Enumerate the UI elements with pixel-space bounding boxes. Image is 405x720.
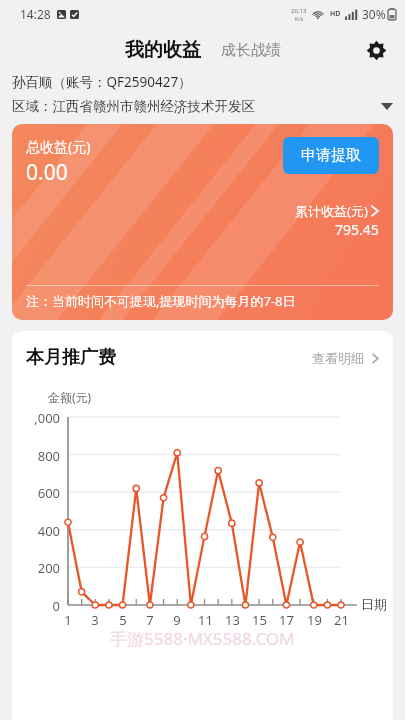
staticText: 800 bbox=[37, 447, 60, 465]
staticText: 总收益(元) bbox=[26, 137, 91, 156]
button[interactable]: 我的收益 bbox=[125, 38, 201, 62]
staticText: 金额(元) bbox=[48, 389, 92, 405]
staticText: 795.45 bbox=[335, 220, 379, 239]
staticText: 1 bbox=[64, 611, 72, 629]
staticText: 14:28 bbox=[20, 6, 51, 22]
button[interactable]: 成长战绩 bbox=[221, 41, 281, 60]
staticText: 成长战绩 bbox=[221, 41, 281, 60]
staticText: 0 bbox=[52, 597, 60, 615]
staticText: 3 bbox=[91, 611, 99, 629]
button[interactable]: 区域：江西省赣州市赣州经济技术开发区 bbox=[12, 98, 393, 115]
staticText: 17 bbox=[279, 611, 294, 629]
staticText: 查看明细 bbox=[312, 350, 364, 366]
staticText: 19 bbox=[307, 611, 322, 629]
button[interactable]: Settings bbox=[356, 30, 396, 70]
staticText: HD bbox=[330, 9, 341, 19]
staticText: K/s bbox=[295, 15, 304, 22]
staticText: 5 bbox=[119, 611, 127, 629]
staticText: 21 bbox=[334, 611, 349, 629]
staticText: 200 bbox=[37, 559, 60, 577]
staticText: 区域：江西省赣州市赣州经济技术开发区 bbox=[12, 98, 255, 115]
staticText: 20.13 bbox=[291, 7, 307, 15]
staticText: 日期 bbox=[361, 596, 387, 612]
staticText: 15 bbox=[252, 611, 267, 629]
button[interactable]: 查看明细 bbox=[312, 350, 379, 366]
staticText: 注：当前时间不可提现,提现时间为每月的7-8日 bbox=[26, 292, 296, 310]
button[interactable]: 申请提取 bbox=[283, 137, 379, 174]
staticText: 本月推广费 bbox=[26, 346, 116, 369]
button[interactable]: 累计收益(元) bbox=[295, 202, 379, 239]
staticText: 400 bbox=[37, 522, 60, 540]
staticText: 13 bbox=[225, 611, 240, 629]
staticText: 孙百顺（账号：QF2590427） bbox=[12, 73, 192, 91]
staticText: 我的收益 bbox=[125, 38, 201, 62]
staticText: 0.00 bbox=[26, 158, 68, 187]
staticText: 手游5588·MX5588.COM bbox=[110, 627, 295, 650]
staticText: 11 bbox=[198, 611, 213, 629]
staticText: 30% bbox=[362, 6, 386, 22]
staticText: 9 bbox=[173, 611, 181, 629]
staticText: 7 bbox=[146, 611, 154, 629]
staticText: 600 bbox=[37, 484, 60, 502]
staticText: 累计收益(元) bbox=[295, 202, 368, 220]
staticText: ,000 bbox=[34, 409, 60, 427]
staticText: 申请提取 bbox=[301, 146, 361, 165]
